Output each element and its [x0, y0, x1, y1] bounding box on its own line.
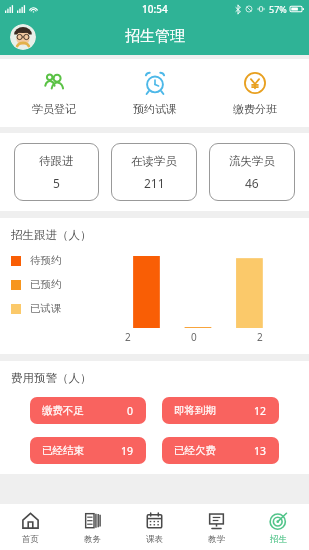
staticText: 已预约: [30, 278, 62, 291]
staticText: 0: [127, 404, 134, 418]
button[interactable]: 预约试课: [109, 68, 201, 118]
staticText: 10:54: [142, 2, 168, 16]
staticText: 在读学员: [131, 154, 177, 168]
button[interactable]: Profile: [10, 24, 36, 50]
staticText: 费用预警（人）: [11, 371, 92, 385]
button[interactable]: 在读学员: [111, 143, 197, 201]
staticText: 13: [254, 444, 267, 458]
button[interactable]: 首页: [0, 504, 61, 550]
staticText: 57%: [269, 3, 287, 15]
button[interactable]: 招生: [247, 504, 309, 550]
button[interactable]: 缴费不足: [30, 397, 146, 424]
staticText: 教务: [84, 534, 101, 545]
staticText: 招生: [270, 534, 287, 545]
staticText: 2: [125, 330, 131, 344]
staticText: 0: [191, 330, 197, 344]
staticText: 招生管理: [125, 27, 185, 46]
button[interactable]: 已经结束: [30, 437, 146, 464]
staticText: 5: [53, 175, 60, 191]
staticText: 招生跟进（人）: [11, 228, 92, 242]
staticText: 46: [245, 175, 259, 191]
staticText: 待预约: [30, 254, 62, 267]
staticText: 12: [254, 404, 267, 418]
staticText: 即将到期: [174, 404, 216, 417]
button[interactable]: 缴费分班: [209, 68, 301, 118]
staticText: 待跟进: [39, 154, 74, 168]
staticText: 流失学员: [229, 154, 275, 168]
staticText: 2: [257, 330, 263, 344]
staticText: 缴费分班: [233, 102, 277, 116]
staticText: 缴费不足: [42, 404, 84, 417]
button[interactable]: 课表: [123, 504, 185, 550]
staticText: 已试课: [30, 302, 62, 315]
button[interactable]: 已经欠费: [162, 437, 279, 464]
staticText: 课表: [146, 534, 163, 545]
staticText: 首页: [22, 534, 39, 545]
button[interactable]: 教务: [61, 504, 123, 550]
staticText: 211: [144, 175, 165, 191]
button[interactable]: 学员登记: [8, 68, 100, 118]
staticText: 19: [121, 444, 134, 458]
button[interactable]: 即将到期: [162, 397, 279, 424]
staticText: 学员登记: [32, 102, 76, 116]
staticText: 预约试课: [133, 102, 177, 116]
button[interactable]: 教学: [185, 504, 247, 550]
button[interactable]: 流失学员: [209, 143, 295, 201]
staticText: 已经欠费: [174, 444, 216, 457]
button[interactable]: 待跟进: [14, 143, 99, 201]
staticText: 已经结束: [42, 444, 84, 457]
staticText: 教学: [208, 534, 225, 545]
